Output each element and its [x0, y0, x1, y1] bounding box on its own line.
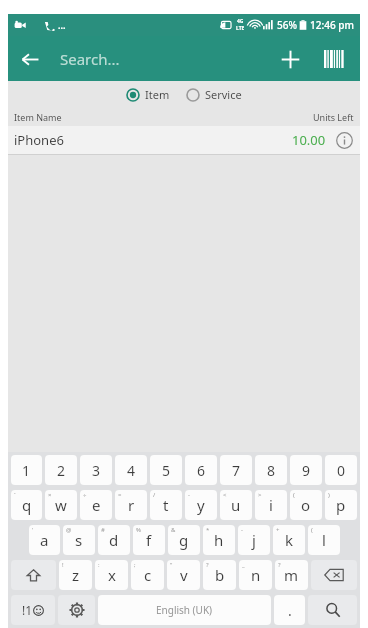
- button[interactable]: k: [273, 525, 305, 555]
- staticText: .: [288, 601, 292, 620]
- staticText: j: [252, 530, 256, 550]
- staticText: 6: [197, 461, 206, 480]
- button[interactable]: English (UK): [98, 595, 271, 625]
- staticText: 12:46 pm: [310, 18, 354, 32]
- button[interactable]: r: [115, 490, 147, 520]
- button[interactable]: 0: [325, 455, 357, 485]
- button[interactable]: f: [133, 525, 165, 555]
- button[interactable]: 9: [290, 455, 322, 485]
- staticText: t: [163, 495, 169, 515]
- staticText: (: [311, 526, 313, 534]
- button[interactable]: Add: [268, 37, 312, 81]
- button[interactable]: y: [185, 490, 217, 520]
- button[interactable]: Info: [334, 130, 354, 150]
- staticText: <: [223, 491, 227, 499]
- staticText: Service: [205, 87, 242, 102]
- staticText: h: [214, 530, 224, 550]
- button[interactable]: i: [255, 490, 287, 520]
- staticText: iPhone6: [14, 131, 64, 149]
- staticText: v: [180, 565, 188, 585]
- button[interactable]: Search...: [52, 36, 268, 81]
- staticText: n: [251, 565, 261, 585]
- staticText: -: [241, 526, 243, 534]
- button[interactable]: Scan barcode: [312, 36, 360, 81]
- button[interactable]: Keyboard settings: [58, 595, 95, 625]
- staticText: #: [101, 526, 105, 534]
- button[interactable]: m: [275, 560, 308, 590]
- staticText: c: [144, 565, 152, 585]
- button[interactable]: t: [150, 490, 182, 520]
- staticText: k: [285, 530, 294, 550]
- button[interactable]: Back: [8, 37, 52, 81]
- staticText: `: [14, 491, 16, 499]
- staticText: (: [293, 491, 295, 499]
- staticText: m: [284, 565, 299, 585]
- button[interactable]: Shift: [11, 560, 56, 590]
- staticText: ÷: [83, 491, 87, 499]
- staticText: >: [258, 491, 262, 499]
- button[interactable]: h: [203, 525, 235, 555]
- staticText: 2: [57, 461, 66, 480]
- button[interactable]: g: [168, 525, 200, 555]
- staticText: 9: [302, 461, 311, 480]
- button[interactable]: n: [239, 560, 272, 590]
- button[interactable]: 3: [80, 455, 112, 485]
- staticText: 3: [92, 461, 101, 480]
- button[interactable]: d: [98, 525, 130, 555]
- button[interactable]: b: [203, 560, 236, 590]
- staticText: Item: [145, 87, 170, 102]
- button[interactable]: e: [80, 490, 112, 520]
- staticText: ': [32, 526, 34, 534]
- staticText: -: [188, 491, 190, 499]
- staticText: 1: [22, 461, 31, 480]
- staticText: d: [109, 530, 119, 550]
- button[interactable]: l: [308, 525, 340, 555]
- staticText: f: [146, 530, 152, 550]
- button[interactable]: z: [59, 560, 92, 590]
- button[interactable]: 2: [45, 455, 77, 485]
- button[interactable]: p: [325, 490, 357, 520]
- staticText: English (UK): [156, 603, 213, 617]
- staticText: ×: [48, 491, 52, 499]
- button[interactable]: s: [63, 525, 95, 555]
- button[interactable]: 8: [255, 455, 287, 485]
- staticText: 10.00: [292, 131, 326, 149]
- button[interactable]: c: [131, 560, 164, 590]
- button[interactable]: Backspace: [311, 560, 357, 590]
- staticText: 7: [232, 461, 241, 480]
- button[interactable]: .: [274, 595, 305, 625]
- staticText: Units Left: [313, 111, 354, 123]
- staticText: w: [55, 495, 67, 515]
- button[interactable]: o: [290, 490, 322, 520]
- staticText: /: [153, 491, 156, 499]
- button[interactable]: iPhone6: [8, 126, 360, 154]
- button[interactable]: Search: [308, 595, 357, 625]
- staticText: LTE: [236, 25, 245, 32]
- button[interactable]: w: [45, 490, 77, 520]
- button[interactable]: Item: [126, 87, 170, 102]
- button[interactable]: !1: [11, 595, 55, 625]
- staticText: ...: [58, 19, 66, 31]
- staticText: 4: [127, 461, 136, 480]
- staticText: b: [215, 565, 225, 585]
- button[interactable]: q: [11, 490, 42, 520]
- button[interactable]: 5: [150, 455, 182, 485]
- staticText: +: [276, 526, 280, 534]
- button[interactable]: 4: [115, 455, 147, 485]
- button[interactable]: u: [220, 490, 252, 520]
- button[interactable]: Service: [186, 87, 242, 102]
- staticText: l: [322, 530, 326, 550]
- staticText: x: [108, 565, 116, 585]
- button[interactable]: 7: [220, 455, 252, 485]
- button[interactable]: a: [29, 525, 60, 555]
- staticText: 8: [267, 461, 276, 480]
- button[interactable]: v: [167, 560, 200, 590]
- staticText: !: [62, 561, 64, 569]
- button[interactable]: 1: [11, 455, 42, 485]
- button[interactable]: 6: [185, 455, 217, 485]
- button[interactable]: j: [238, 525, 270, 555]
- button[interactable]: x: [95, 560, 128, 590]
- staticText: !1: [22, 602, 33, 618]
- staticText: i: [269, 495, 273, 515]
- staticText: Item Name: [14, 111, 62, 123]
